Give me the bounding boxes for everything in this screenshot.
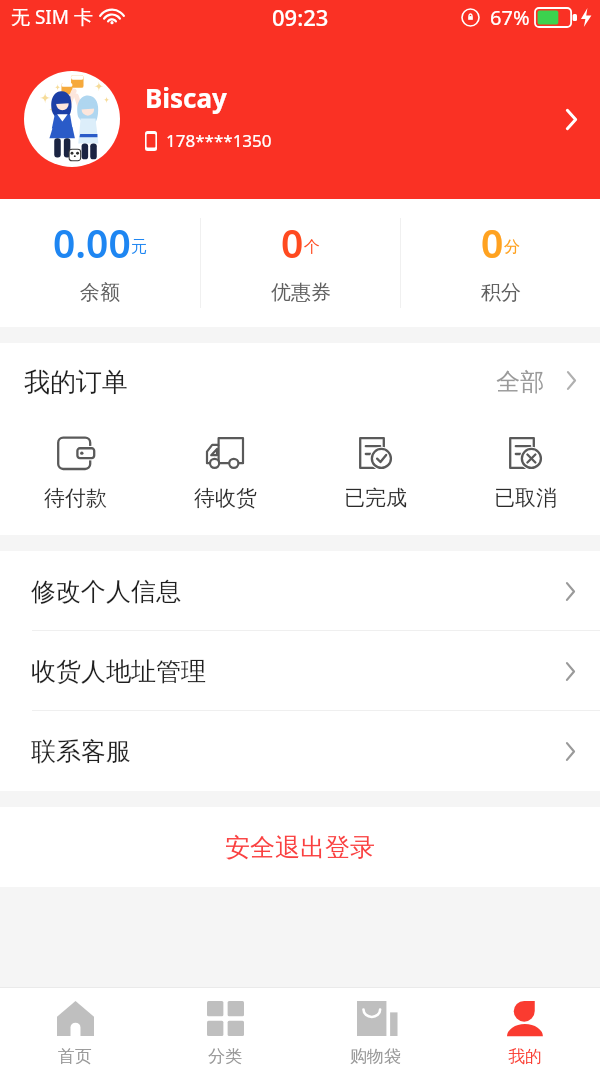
staticText: 09:23 — [272, 2, 329, 32]
staticText: 无 SIM 卡 — [11, 4, 93, 30]
staticText: 元 — [131, 237, 147, 257]
button[interactable]: 购物袋 — [300, 987, 450, 1067]
staticText: 购物袋 — [350, 1046, 401, 1067]
staticText: Biscay — [145, 80, 227, 115]
staticText: 已取消 — [494, 485, 557, 511]
staticText: 首页 — [58, 1046, 92, 1067]
button[interactable]: 我的 — [450, 987, 600, 1067]
button[interactable]: 待收货 — [150, 409, 300, 535]
staticText: 个 — [304, 237, 320, 257]
button[interactable]: 安全退出登录 — [0, 807, 600, 887]
button[interactable]: 收货人地址管理 — [0, 631, 600, 711]
button[interactable]: 0.00 — [0, 199, 200, 327]
staticText: 我的 — [508, 1046, 542, 1067]
button[interactable]: 修改个人信息 — [0, 551, 600, 631]
staticText: 余额 — [80, 280, 120, 305]
staticText: 修改个人信息 — [31, 576, 181, 607]
button[interactable]: 分类 — [150, 987, 300, 1067]
staticText: 待付款 — [44, 485, 107, 511]
staticText: 分 — [504, 237, 520, 257]
staticText: 联系客服 — [31, 736, 131, 767]
staticText: 178****1350 — [166, 129, 272, 152]
staticText: 全部 — [496, 367, 544, 397]
staticText: 0.00 — [53, 216, 131, 269]
staticText: 安全退出登录 — [225, 832, 375, 863]
staticText: 待收货 — [194, 485, 257, 511]
staticText: 已完成 — [344, 485, 407, 511]
button[interactable]: 全部 — [492, 366, 580, 397]
staticText: 优惠券 — [271, 280, 331, 305]
button[interactable]: 已完成 — [300, 409, 450, 535]
button[interactable]: 0 — [401, 199, 600, 327]
button[interactable]: 已取消 — [450, 409, 600, 535]
staticText: 我的订单 — [24, 366, 128, 399]
staticText: 0 — [281, 216, 304, 269]
staticText: 积分 — [481, 280, 521, 305]
staticText: 67% — [490, 4, 530, 31]
staticText: 收货人地址管理 — [31, 656, 206, 687]
button[interactable]: 待付款 — [0, 409, 150, 535]
button[interactable]: 联系客服 — [0, 711, 600, 791]
button[interactable]: Profile details — [545, 98, 587, 140]
button[interactable]: 0 — [201, 199, 400, 327]
staticText: 0 — [481, 216, 504, 269]
staticText: 分类 — [208, 1046, 242, 1067]
button[interactable]: 首页 — [0, 987, 150, 1067]
